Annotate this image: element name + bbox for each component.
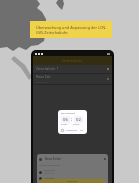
staticText: Nur heute <box>44 177 55 180</box>
button[interactable]: Zeitschaltuhr 1 <box>33 65 112 73</box>
staticText: Jede Woche <box>44 172 55 175</box>
button[interactable]: Überwachung und Anpassung der LCN- <box>30 21 112 38</box>
staticText: GVS-Zeitschaltuhr. <box>36 30 69 35</box>
staticText: Neue Zeit <box>36 75 51 79</box>
button[interactable]: Nur heute <box>39 177 106 180</box>
button[interactable]: Mo, Di, Mi <box>39 169 106 175</box>
staticText: 02 <box>76 117 81 123</box>
staticText: Überwachung und Anpassung der LCN- <box>36 25 107 30</box>
staticText: Stunde <box>61 123 68 126</box>
staticText: Mo, Di, Mi <box>44 169 55 172</box>
staticText: Wochentag auswählen <box>39 164 61 167</box>
staticText: : <box>71 116 73 123</box>
staticText: Neue Zeiten <box>45 157 62 161</box>
button[interactable]: Neue Zeit <box>33 74 112 84</box>
button[interactable]: 02 <box>74 116 83 123</box>
staticText: Zeitschaltuhr 1 <box>36 67 59 71</box>
staticText: Speichern <box>67 180 78 183</box>
button[interactable]: Abbrechen <box>66 129 78 132</box>
staticText: 06:02 Uhr <box>36 80 47 83</box>
staticText: Zeitschaltuhr <box>62 59 83 63</box>
staticText: 06 <box>63 117 68 123</box>
button[interactable]: Speichern <box>40 179 105 183</box>
staticText: Zeit eingeben <box>61 112 76 115</box>
staticText: Minute <box>73 123 80 126</box>
button[interactable]: Tastatureingabe <box>61 129 64 132</box>
button[interactable]: OK <box>80 129 84 132</box>
button[interactable]: 06 <box>61 116 70 123</box>
